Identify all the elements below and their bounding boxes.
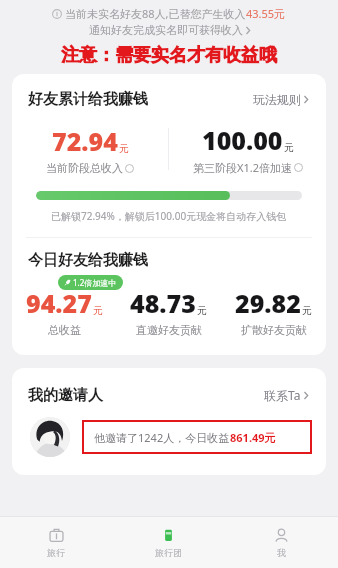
staticText: 元 [93,304,103,317]
staticText: 直邀好友贡献 [136,323,202,337]
staticText: 43.55元 [246,6,286,21]
staticText: 元 [302,304,312,317]
button[interactable]: 联系Ta [260,383,312,407]
staticText: 72.94 [52,124,118,158]
staticText: 元 [197,304,207,317]
staticText: 第三阶段X1.2倍加速 [193,160,292,175]
staticText: 48.73 [130,286,196,320]
button[interactable]: 他邀请了1242人，今日收益 [82,420,312,454]
button[interactable]: Inviter avatar [30,417,70,457]
button[interactable]: 当前未实名好友88人,已替您产生收入 [0,0,338,37]
other: Me [273,527,290,544]
staticText: 旅行 [47,547,65,558]
staticText: 扩散好友贡献 [241,323,307,337]
button[interactable]: Travel [0,516,112,568]
staticText: 已解锁72.94%，解锁后100.00元现金将自动存入钱包 [51,209,287,223]
staticText: 联系Ta [264,387,301,403]
staticText: 旅行团 [155,547,182,558]
staticText: 元 [284,141,294,154]
staticText: 29.82 [235,286,301,320]
staticText: 当前阶段总收入 [46,161,123,175]
staticText: 玩法规则 [253,92,301,107]
staticText: 今日好友给我赚钱 [28,251,148,270]
other: Travel [48,527,65,544]
staticText: 我的邀请人 [28,386,103,405]
staticText: 总收益 [48,323,81,337]
staticText: 注意：需要实名才有收益哦 [61,44,277,67]
staticText: 他邀请了1242人，今日收益 [94,430,230,445]
staticText: 861.49元 [230,430,276,445]
button[interactable]: Me [225,516,338,568]
staticText: 好友累计给我赚钱 [28,90,148,109]
button[interactable]: 玩法规则 [249,88,312,111]
staticText: 元 [119,142,129,155]
staticText: 我 [277,547,286,558]
staticText: 通知好友完成实名即可获得收入 [89,23,243,37]
staticText: 94.27 [26,286,92,320]
staticText: 100.00 [202,123,283,157]
staticText: 1.2倍加速中 [73,277,117,288]
staticText: 当前未实名好友88人,已替您产生收入 [65,6,246,21]
button[interactable]: Travel group [112,516,225,568]
other: Travel group [160,527,177,544]
